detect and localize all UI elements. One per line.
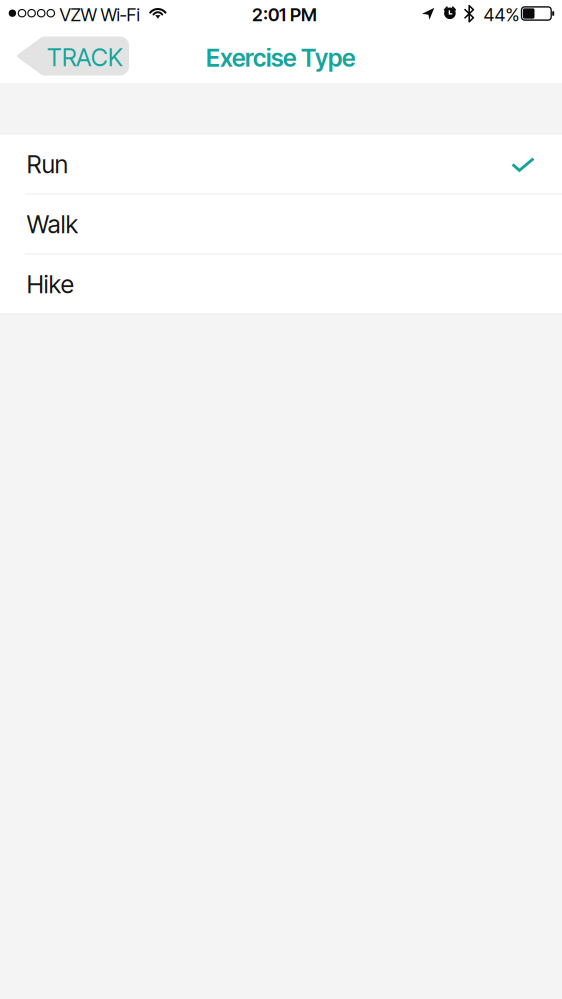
staticText: Hike xyxy=(27,270,74,299)
button[interactable]: Hike xyxy=(0,254,562,314)
button[interactable]: TRACK xyxy=(16,36,129,75)
staticText: 2:01 PM xyxy=(252,4,317,26)
button[interactable]: Run xyxy=(0,134,562,194)
button[interactable]: Walk xyxy=(0,194,562,254)
staticText: Exercise Type xyxy=(206,43,355,72)
staticText: TRACK xyxy=(47,43,123,72)
staticText: Run xyxy=(27,150,68,179)
staticText: VZW Wi-Fi xyxy=(59,4,139,26)
staticText: 44% xyxy=(483,4,519,26)
staticText: Walk xyxy=(27,210,78,239)
